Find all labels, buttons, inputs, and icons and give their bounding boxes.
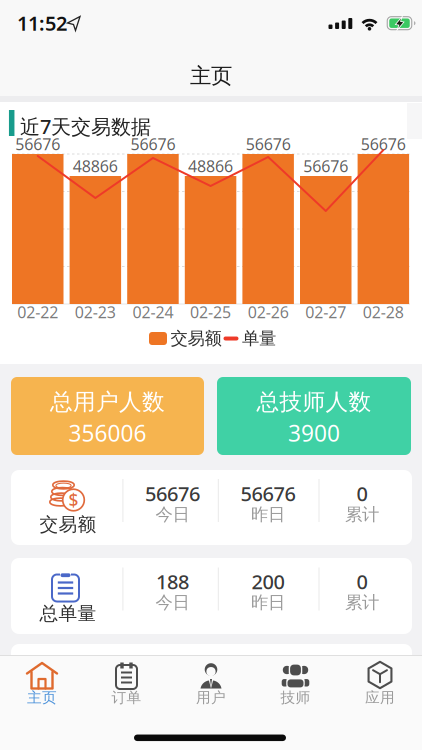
staticText: 02-22 [17,301,58,323]
staticText: 02-25 [190,301,231,323]
staticText: 用户 [196,688,226,706]
staticText: 02-23 [75,301,116,323]
staticText: 56676 [145,480,200,507]
staticText: 02-27 [305,301,346,323]
staticText: 02-26 [248,301,289,323]
staticText: 单量 [242,328,276,349]
staticText: 200 [251,568,284,595]
staticText: 交易额 [170,328,221,349]
staticText: 48866 [73,155,118,177]
button[interactable]: 总用户人数 [11,377,204,455]
staticText: 交易额 [39,513,96,536]
staticText: 56676 [361,133,406,155]
staticText: 56676 [130,133,175,155]
staticText: 今日 [155,592,189,613]
staticText: 48866 [188,155,233,177]
staticText: 总用户人数 [50,388,165,416]
staticText: 56676 [303,155,348,177]
button[interactable]: 技师 [253,658,337,708]
button[interactable]: 主页 [0,658,84,708]
staticText: 应用 [365,688,395,706]
staticText: 近7天交易数据 [20,113,151,140]
staticText: 56676 [246,133,291,155]
staticText: 188 [156,568,189,595]
staticText: 总单量 [39,602,96,625]
staticText: 昨日 [251,504,285,525]
staticText: 主页 [27,688,57,706]
staticText: 累计 [345,504,379,525]
staticText: 总技师人数 [256,388,371,416]
staticText: 今日 [155,504,189,525]
staticText: 56676 [240,480,295,507]
staticText: 356006 [68,418,146,448]
button[interactable]: 应用 [338,658,422,708]
staticText: 0 [356,480,367,507]
staticText: $ [68,488,78,511]
staticText: 02-28 [363,301,404,323]
staticText: 累计 [345,592,379,613]
staticText: 主页 [190,63,232,89]
staticText: 订单 [111,688,141,706]
staticText: 昨日 [251,592,285,613]
staticText: 3900 [288,418,340,448]
staticText: 0 [356,568,367,595]
staticText: 02-24 [132,301,173,323]
button[interactable]: 用户 [169,658,253,708]
button[interactable]: 订单 [84,658,168,708]
button[interactable]: 总技师人数 [217,377,411,455]
staticText: 11:52 [17,10,67,36]
staticText: 56676 [15,133,60,155]
staticText: 技师 [280,688,310,706]
